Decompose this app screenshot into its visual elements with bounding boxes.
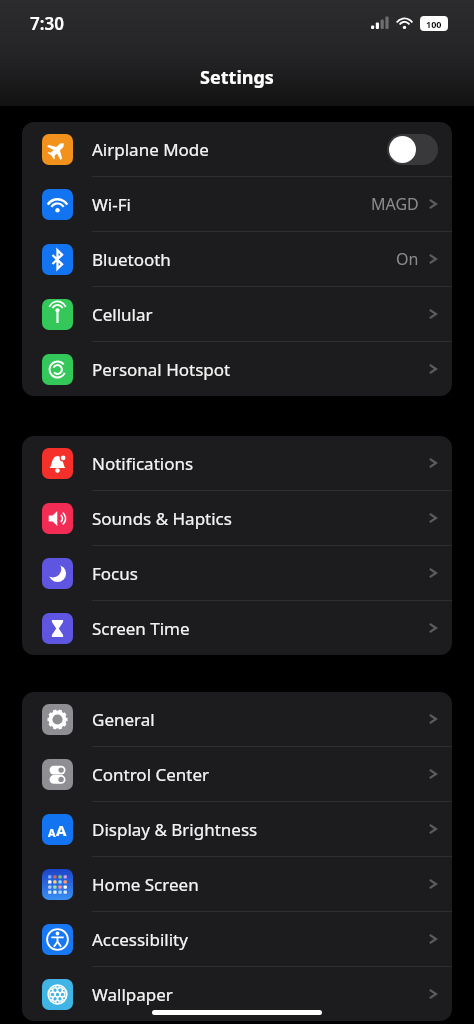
staticText: Sounds & Haptics — [92, 507, 232, 530]
staticText: Personal Hotspot — [92, 358, 231, 381]
staticText: A — [48, 825, 56, 840]
staticText: Airplane Mode — [92, 138, 209, 161]
staticText: On — [396, 248, 419, 270]
staticText: Notifications — [92, 452, 194, 475]
button[interactable]: Bluetooth — [22, 232, 452, 286]
button[interactable]: Wi-Fi — [22, 177, 452, 231]
staticText: Wi-Fi — [92, 193, 131, 216]
staticText: 100 — [426, 18, 442, 30]
staticText: Focus — [92, 562, 138, 585]
staticText: Wallpaper — [92, 983, 173, 1006]
staticText: MAGD — [371, 193, 419, 215]
staticText: Cellular — [92, 303, 153, 326]
button[interactable]: Control Center — [22, 747, 452, 801]
button[interactable]: Personal Hotspot — [22, 342, 452, 396]
button[interactable]: Wallpaper — [22, 967, 452, 1021]
button[interactable]: Cellular — [22, 287, 452, 341]
button[interactable]: Sounds & Haptics — [22, 491, 452, 545]
button[interactable]: General — [22, 692, 452, 746]
staticText: General — [92, 708, 155, 731]
button[interactable]: Notifications — [22, 436, 452, 490]
staticText: Control Center — [92, 763, 210, 786]
button[interactable]: Accessibility — [22, 912, 452, 966]
button[interactable]: Focus — [22, 546, 452, 600]
staticText: Screen Time — [92, 617, 190, 640]
staticText: Accessibility — [92, 928, 188, 951]
staticText: Home Screen — [92, 873, 199, 896]
button[interactable]: A — [22, 802, 452, 856]
button[interactable]: Toggle Airplane Mode — [387, 134, 438, 165]
staticText: 7:30 — [30, 12, 64, 35]
button[interactable]: Home Screen — [22, 857, 452, 911]
staticText: Settings — [200, 65, 274, 90]
button[interactable]: Screen Time — [22, 601, 452, 655]
button[interactable]: Airplane Mode — [22, 122, 452, 176]
staticText: A — [56, 820, 67, 840]
staticText: Display & Brightness — [92, 818, 258, 841]
staticText: Bluetooth — [92, 248, 171, 271]
